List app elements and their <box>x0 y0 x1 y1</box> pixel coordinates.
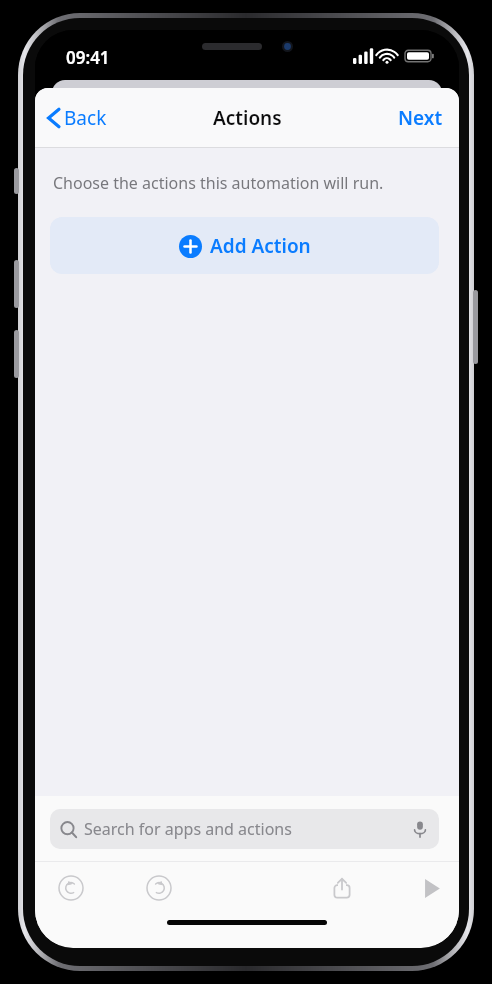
staticText: Back <box>64 105 107 131</box>
staticText: 09:41 <box>66 46 110 69</box>
button[interactable]: Undo <box>52 869 90 907</box>
staticText: Add Action <box>210 233 311 259</box>
button[interactable]: Back <box>41 99 113 137</box>
button[interactable]: Search for apps and actions <box>50 809 439 849</box>
button[interactable]: Add Action <box>50 217 439 274</box>
button[interactable]: Next <box>390 99 451 137</box>
staticText: Choose the actions this automation will … <box>53 172 384 194</box>
other: Voice search <box>411 820 429 838</box>
staticText: Search for apps and actions <box>84 818 411 840</box>
button[interactable]: Run <box>412 869 450 907</box>
button[interactable]: Share <box>323 869 361 907</box>
staticText: Next <box>398 105 443 131</box>
staticText: Actions <box>213 105 282 131</box>
button[interactable]: Redo <box>140 869 178 907</box>
